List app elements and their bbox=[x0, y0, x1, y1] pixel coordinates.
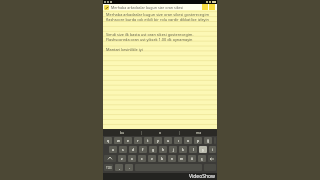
button[interactable]: a bbox=[109, 146, 117, 153]
staticText: x bbox=[131, 156, 133, 161]
staticText: g bbox=[152, 147, 155, 152]
staticText: s bbox=[122, 147, 124, 152]
button[interactable]: c bbox=[138, 155, 146, 162]
button[interactable]: y bbox=[154, 137, 162, 144]
staticText: ?123 bbox=[106, 166, 112, 170]
staticText: Mantari kesinlikle iyi bbox=[106, 47, 143, 52]
button[interactable]: d bbox=[129, 146, 137, 153]
button[interactable]: ö bbox=[188, 155, 196, 162]
staticText: ğ bbox=[207, 138, 210, 143]
staticText: a bbox=[112, 147, 114, 152]
button[interactable]: ğ bbox=[204, 137, 212, 144]
button[interactable]: v bbox=[148, 155, 156, 162]
staticText: z bbox=[121, 156, 123, 161]
button[interactable]: o bbox=[142, 129, 179, 136]
staticText: u bbox=[167, 138, 170, 143]
button[interactable]: s bbox=[119, 146, 127, 153]
staticText: Flashscoreda oran ust yiksek 1.00 dk oyn… bbox=[106, 37, 193, 42]
staticText: o bbox=[187, 138, 190, 143]
button[interactable]: t bbox=[144, 137, 152, 144]
button[interactable]: g bbox=[149, 146, 157, 153]
staticText: b bbox=[161, 156, 164, 161]
button[interactable]: l bbox=[189, 146, 197, 153]
button[interactable]: backspace bbox=[208, 155, 216, 162]
staticText: ö bbox=[191, 156, 194, 161]
staticText: y bbox=[157, 138, 159, 143]
button[interactable]: ş bbox=[199, 146, 207, 153]
staticText: VideoShow bbox=[189, 173, 215, 180]
staticText: k bbox=[182, 147, 184, 152]
button[interactable]: z bbox=[118, 155, 126, 162]
button[interactable]: ?123 bbox=[104, 164, 113, 171]
button[interactable]: r bbox=[134, 137, 142, 144]
button[interactable]: w bbox=[114, 137, 122, 144]
staticText: c bbox=[141, 156, 143, 161]
staticText: h bbox=[162, 147, 165, 152]
staticText: q bbox=[107, 138, 110, 143]
button[interactable]: i bbox=[209, 146, 216, 153]
button[interactable]: u bbox=[164, 137, 172, 144]
button[interactable]: f bbox=[139, 146, 147, 153]
button[interactable]: shift bbox=[104, 155, 116, 162]
staticText: m bbox=[180, 156, 184, 161]
button[interactable]: o bbox=[184, 137, 192, 144]
staticText: ç bbox=[201, 156, 203, 161]
staticText: w bbox=[117, 138, 120, 143]
staticText: bu bbox=[120, 130, 125, 135]
staticText: ma bbox=[196, 130, 202, 135]
button[interactable]: k bbox=[179, 146, 187, 153]
button[interactable]: . bbox=[125, 164, 133, 171]
staticText: flashscore burda cok etkili bir rolu var… bbox=[106, 17, 209, 22]
button[interactable]: , bbox=[115, 164, 123, 171]
button[interactable]: bu bbox=[103, 129, 141, 136]
button[interactable]: ç bbox=[198, 155, 206, 162]
staticText: n bbox=[171, 156, 174, 161]
staticText: , bbox=[119, 165, 120, 170]
staticText: Merhaba arkadaslar bugun size oran sikes… bbox=[111, 5, 202, 10]
button[interactable]: x bbox=[128, 155, 136, 162]
staticText: j bbox=[173, 147, 174, 152]
staticText: e bbox=[127, 138, 129, 143]
staticText: f bbox=[142, 147, 144, 152]
button[interactable]: e bbox=[124, 137, 132, 144]
button[interactable]: ı bbox=[174, 137, 182, 144]
button[interactable]: Note icon bbox=[104, 5, 109, 10]
button[interactable]: ma bbox=[180, 129, 217, 136]
staticText: v bbox=[151, 156, 153, 161]
button[interactable]: b bbox=[158, 155, 166, 162]
staticText: . bbox=[129, 165, 130, 170]
staticText: t bbox=[147, 138, 149, 143]
staticText: l bbox=[193, 147, 194, 152]
button[interactable]: p bbox=[194, 137, 202, 144]
staticText: i bbox=[212, 147, 213, 152]
button[interactable]: m bbox=[178, 155, 186, 162]
button[interactable]: j bbox=[169, 146, 177, 153]
staticText: d bbox=[132, 147, 135, 152]
button[interactable]: n bbox=[168, 155, 176, 162]
staticText: p bbox=[197, 138, 200, 143]
staticText: ş bbox=[202, 147, 204, 152]
button[interactable]: h bbox=[159, 146, 167, 153]
staticText: r bbox=[137, 138, 139, 143]
staticText: ı bbox=[178, 138, 179, 143]
staticText: Simdi size ilk basta ust oran sikesi gos… bbox=[106, 32, 194, 37]
button[interactable]: q bbox=[104, 137, 112, 144]
staticText: o bbox=[159, 130, 162, 135]
staticText: Merhaba arkadaslar bugun size oran sikes… bbox=[106, 12, 209, 17]
